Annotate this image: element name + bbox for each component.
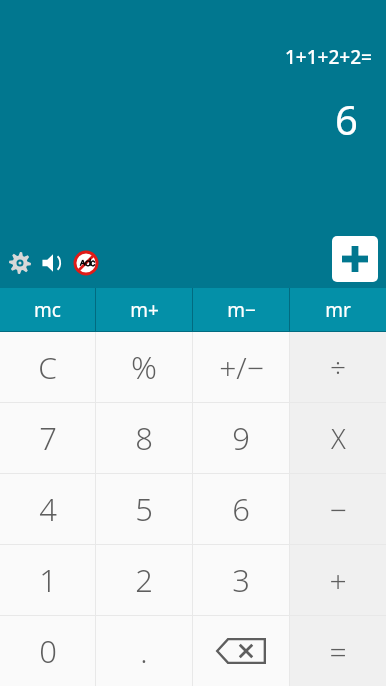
button[interactable]: Sound xyxy=(36,246,70,280)
staticText: 8 xyxy=(135,417,153,459)
button[interactable]: 8 xyxy=(96,403,192,473)
staticText: 6 xyxy=(232,488,250,530)
button[interactable]: Remove ads xyxy=(70,247,102,279)
button[interactable]: 7 xyxy=(0,403,95,473)
button[interactable]: 0 xyxy=(0,616,95,686)
staticText: = xyxy=(329,631,347,672)
button[interactable]: X xyxy=(290,403,386,473)
staticText: − xyxy=(329,489,347,530)
button[interactable]: Backspace xyxy=(193,616,289,686)
staticText: 6 xyxy=(335,92,358,146)
button[interactable]: % xyxy=(96,332,192,402)
button[interactable]: +/− xyxy=(193,332,289,402)
button[interactable]: 3 xyxy=(193,545,289,615)
staticText: ÷ xyxy=(330,348,346,386)
button[interactable]: 5 xyxy=(96,474,192,544)
button[interactable]: 9 xyxy=(193,403,289,473)
staticText: 5 xyxy=(135,488,153,530)
staticText: 2 xyxy=(135,559,153,601)
staticText: + xyxy=(329,560,347,601)
staticText: 1+1+2+2= xyxy=(285,44,372,70)
button[interactable]: m+ xyxy=(96,288,192,331)
button[interactable]: Settings xyxy=(4,247,36,279)
button[interactable]: C xyxy=(0,332,95,402)
button[interactable]: mc xyxy=(0,288,95,331)
staticText: C xyxy=(38,347,57,388)
staticText: % xyxy=(131,345,157,389)
staticText: . xyxy=(140,631,148,672)
button[interactable]: − xyxy=(290,474,386,544)
staticText: m− xyxy=(227,297,256,323)
staticText: X xyxy=(331,420,346,457)
staticText: +/− xyxy=(219,347,264,388)
staticText: mr xyxy=(325,297,351,323)
button[interactable]: ÷ xyxy=(290,332,386,402)
button[interactable]: 6 xyxy=(193,474,289,544)
button[interactable]: 2 xyxy=(96,545,192,615)
button[interactable]: mr xyxy=(290,288,386,331)
staticText: 7 xyxy=(39,417,57,459)
staticText: mc xyxy=(34,297,61,323)
staticText: 1 xyxy=(39,559,57,601)
staticText: 0 xyxy=(39,630,57,672)
staticText: m+ xyxy=(130,297,159,323)
button[interactable]: Add xyxy=(332,236,378,282)
button[interactable]: 4 xyxy=(0,474,95,544)
staticText: 4 xyxy=(39,488,57,530)
button[interactable]: = xyxy=(290,616,386,686)
staticText: 9 xyxy=(232,417,250,459)
button[interactable]: . xyxy=(96,616,192,686)
button[interactable]: 1 xyxy=(0,545,95,615)
staticText: 3 xyxy=(232,559,250,601)
button[interactable]: + xyxy=(290,545,386,615)
button[interactable]: m− xyxy=(193,288,289,331)
